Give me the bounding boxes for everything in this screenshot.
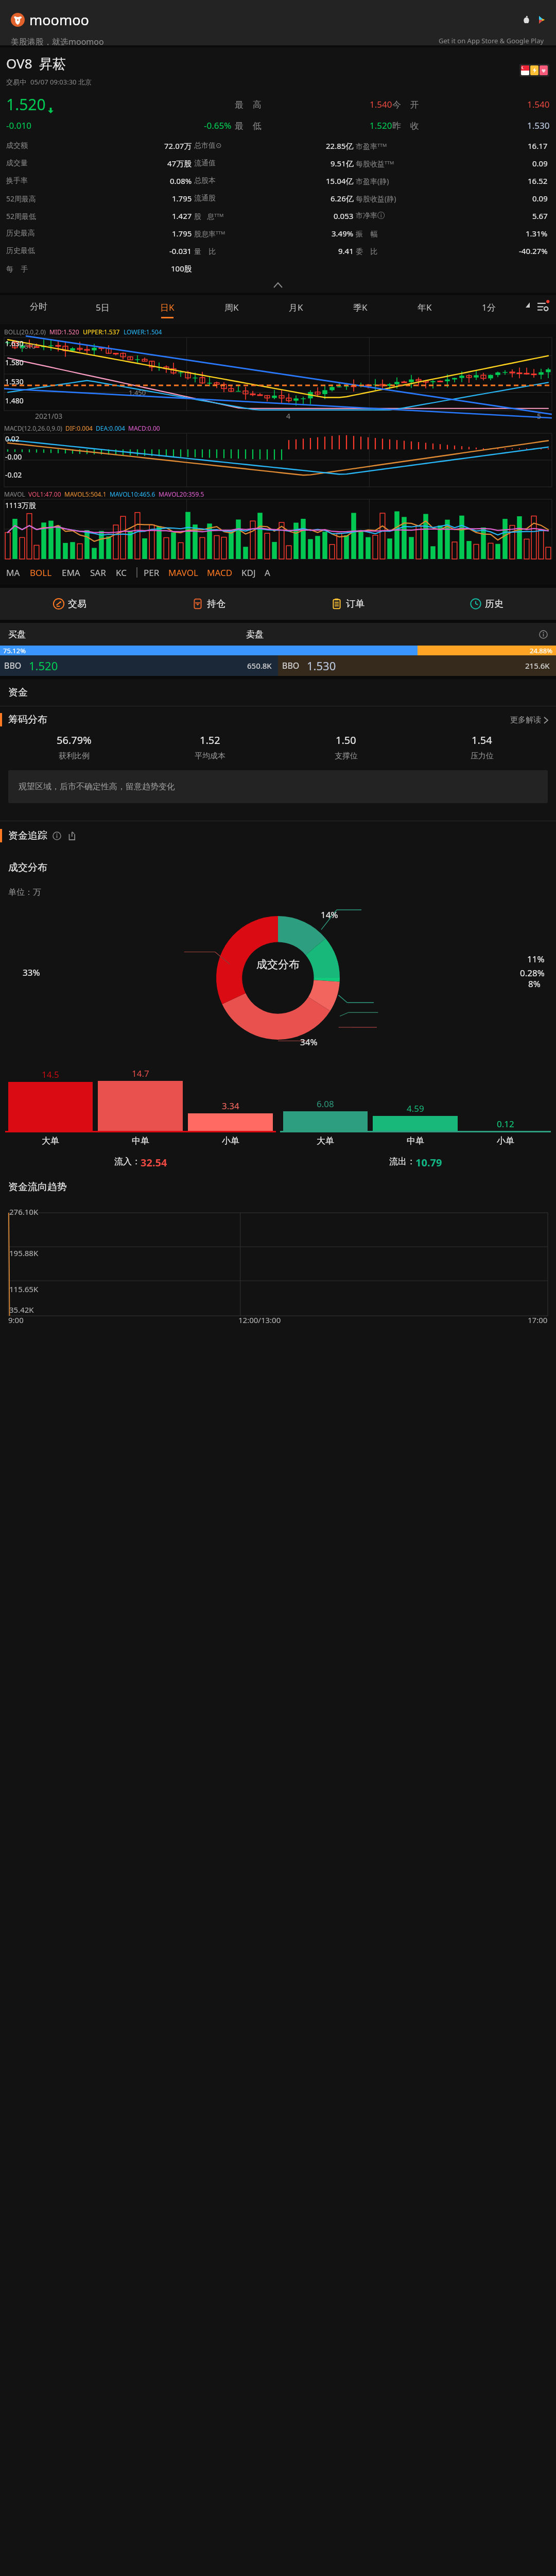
staticText: 1.520 bbox=[6, 94, 46, 115]
button[interactable]: BOLL bbox=[30, 567, 62, 579]
staticText: 月K bbox=[289, 301, 303, 313]
staticText: 3.34 bbox=[222, 1100, 239, 1112]
button[interactable]: 历史 bbox=[417, 588, 556, 620]
staticText: SAR bbox=[90, 567, 106, 579]
button[interactable]: 持仓 bbox=[139, 588, 278, 620]
staticText: 24.88% bbox=[530, 646, 553, 655]
staticText: 1.795 bbox=[172, 228, 192, 239]
staticText: 季K bbox=[353, 301, 368, 313]
button[interactable]: 日K bbox=[135, 295, 199, 324]
staticText: 周K bbox=[224, 301, 239, 313]
staticText: 订单 bbox=[346, 598, 364, 610]
staticText: 观望区域，后市不确定性高，留意趋势变化 bbox=[19, 782, 175, 792]
staticText: 分时 bbox=[30, 301, 47, 312]
button[interactable]: 5日 bbox=[71, 295, 135, 324]
staticText: 52周最低 bbox=[6, 211, 37, 221]
staticText: 流通值 bbox=[194, 159, 216, 168]
button[interactable]: Favourite bbox=[540, 65, 548, 75]
staticText: 0.08% bbox=[170, 176, 192, 186]
staticText: 52周最高 bbox=[6, 194, 37, 204]
button[interactable]: 季K bbox=[328, 295, 392, 324]
other: Google Play bbox=[537, 16, 545, 24]
button[interactable]: BBO bbox=[278, 655, 556, 676]
staticText: 昨 收 bbox=[392, 120, 419, 131]
staticText: 115.65K bbox=[9, 1284, 39, 1294]
button[interactable]: 交易 bbox=[0, 588, 139, 620]
button[interactable]: Collapse bbox=[0, 277, 556, 293]
button[interactable]: MACD bbox=[207, 567, 241, 579]
button[interactable]: PER bbox=[144, 567, 168, 579]
staticText: -0.00 bbox=[5, 452, 22, 462]
staticText: DEA:0.004 bbox=[96, 424, 125, 432]
button[interactable]: Settings bbox=[534, 295, 552, 324]
staticText: EMA bbox=[62, 567, 80, 579]
staticText: 0.09 bbox=[532, 193, 548, 204]
staticText: 资金追踪 bbox=[8, 829, 47, 842]
staticText: 15.04亿 bbox=[326, 176, 354, 186]
staticText: 流入： bbox=[114, 1156, 141, 1167]
staticText: 1.450 bbox=[129, 388, 146, 397]
staticText: 大单 bbox=[42, 1136, 59, 1146]
button[interactable]: KDJ bbox=[241, 567, 265, 579]
staticText: 1.31% bbox=[526, 228, 548, 239]
staticText: 33% bbox=[23, 967, 40, 978]
staticText: 市净率ⓘ bbox=[356, 211, 385, 221]
staticText: 34% bbox=[300, 1036, 318, 1048]
button[interactable]: KC bbox=[116, 567, 136, 579]
button[interactable]: EMA bbox=[62, 567, 90, 579]
staticText: DIF:0.004 bbox=[65, 424, 93, 432]
staticText: -0.010 bbox=[6, 120, 31, 131]
staticText: 1.54 bbox=[472, 733, 492, 747]
staticText: UPPER:1.537 bbox=[83, 328, 120, 336]
button[interactable]: 1分 bbox=[457, 295, 521, 324]
staticText: 1.520 bbox=[370, 120, 392, 131]
button[interactable]: 年K bbox=[392, 295, 457, 324]
button[interactable]: 分时 bbox=[6, 295, 71, 324]
button[interactable]: Share bbox=[67, 832, 76, 840]
button[interactable]: MA bbox=[6, 567, 30, 579]
button[interactable]: 更多解读 bbox=[510, 715, 556, 725]
staticText: 16.17 bbox=[528, 141, 548, 151]
staticText: 1.540 bbox=[370, 98, 392, 110]
staticText: 2021/03 bbox=[35, 411, 63, 421]
staticText: KC bbox=[116, 567, 127, 579]
button[interactable]: Chart settings bbox=[521, 295, 534, 324]
staticText: 9.41 bbox=[338, 246, 354, 256]
staticText: 1.520 bbox=[29, 658, 58, 673]
staticText: BBO bbox=[4, 660, 22, 671]
staticText: 换手率 bbox=[6, 176, 28, 185]
button[interactable]: SAR bbox=[90, 567, 116, 579]
staticText: -0.65% bbox=[204, 120, 232, 131]
staticText: 流出： bbox=[389, 1156, 415, 1167]
staticText: 单位：万 bbox=[8, 887, 41, 897]
button[interactable]: 订单 bbox=[278, 588, 417, 620]
staticText: MAVOL5:504.1 bbox=[64, 490, 107, 498]
staticText: 0.09 bbox=[532, 158, 548, 168]
staticText: VOL1:47.00 bbox=[28, 490, 61, 498]
staticText: PER bbox=[144, 567, 160, 579]
button[interactable]: 75.12% bbox=[0, 646, 418, 655]
button[interactable]: A bbox=[265, 567, 279, 579]
button[interactable]: 月K bbox=[264, 295, 328, 324]
staticText: 12:00/13:00 bbox=[238, 1315, 281, 1325]
staticText: 6.08 bbox=[317, 1098, 334, 1110]
staticText: BOLL bbox=[30, 567, 52, 579]
staticText: A bbox=[265, 567, 270, 579]
staticText: 650.8K bbox=[247, 660, 272, 671]
staticText: 量 比 bbox=[194, 246, 216, 256]
button[interactable]: 周K bbox=[199, 295, 264, 324]
staticText: 交易中 bbox=[6, 78, 26, 86]
staticText: 47万股 bbox=[167, 158, 192, 168]
button[interactable]: Info bbox=[53, 832, 61, 840]
button[interactable]: 24.88% bbox=[418, 646, 556, 655]
staticText: 16.52 bbox=[528, 176, 548, 186]
staticText: 历史最高 bbox=[6, 229, 35, 238]
staticText: 1.610 bbox=[19, 342, 36, 351]
button[interactable]: BBO bbox=[0, 655, 278, 676]
staticText: 35.42K bbox=[9, 1304, 34, 1315]
staticText: 资金 bbox=[8, 686, 28, 699]
staticText: 最 低 bbox=[235, 120, 262, 131]
button[interactable]: MAVOL bbox=[168, 567, 207, 579]
staticText: 1.480 bbox=[5, 396, 24, 405]
other: Market SG bbox=[521, 65, 529, 75]
